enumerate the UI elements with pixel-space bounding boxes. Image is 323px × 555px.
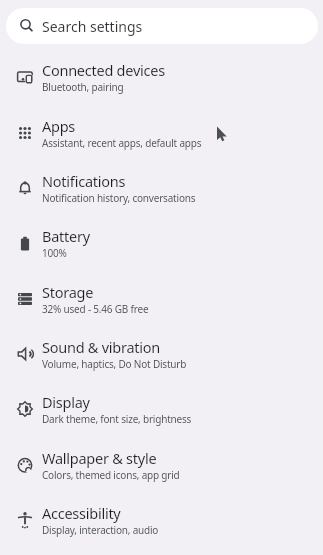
staticText: Display, interaction, audio [42,523,159,537]
button[interactable]: Wallpaper & style [0,437,323,492]
staticText: Connected devices [42,60,165,80]
staticText: Display [42,392,90,412]
staticText: Accessibility [42,503,121,523]
staticText: 100% [42,246,67,260]
staticText: Sound & vibration [42,337,161,357]
button[interactable]: Sound & vibration [0,326,323,381]
button[interactable]: Notifications [0,160,323,215]
button[interactable]: Storage [0,271,323,326]
staticText: Wallpaper & style [42,448,157,468]
button[interactable]: Battery [0,215,323,271]
button[interactable]: Display [0,381,323,437]
staticText: Notification history, conversations [42,191,196,205]
button[interactable]: Connected devices [0,49,323,105]
staticText: Notifications [42,171,126,191]
staticText: Volume, haptics, Do Not Disturb [42,357,187,371]
button[interactable]: Apps [0,105,323,160]
staticText: 32% used - 5.46 GB free [42,302,149,316]
staticText: Bluetooth, pairing [42,80,124,94]
staticText: Colors, themed icons, app grid [42,468,180,482]
staticText: Search settings [42,17,143,36]
staticText: Storage [42,282,94,302]
button[interactable]: Accessibility [0,492,323,547]
staticText: Apps [42,116,76,136]
staticText: Battery [42,226,90,246]
button[interactable]: Search settings [6,8,318,44]
staticText: Dark theme, font size, brightness [42,412,192,426]
staticText: Assistant, recent apps, default apps [42,136,202,150]
